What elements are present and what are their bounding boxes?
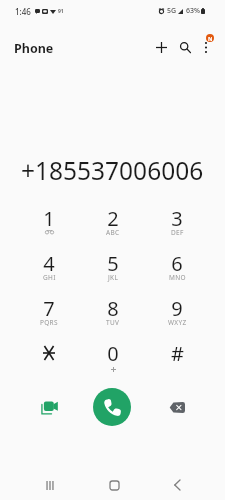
staticText: 3	[171, 205, 183, 232]
staticText: JKL	[108, 273, 119, 282]
staticText: PQRS	[40, 318, 58, 327]
staticText: 5G	[167, 6, 177, 16]
button[interactable]: 2	[81, 205, 145, 250]
button[interactable]: 7	[17, 295, 81, 340]
staticText: +185537006006	[21, 154, 204, 187]
staticText: WXYZ	[168, 318, 187, 327]
staticText: MNO	[169, 273, 186, 282]
button[interactable]: Back	[160, 470, 194, 500]
button[interactable]: 4	[17, 250, 81, 295]
button[interactable]: More options	[194, 35, 218, 59]
staticText: 6	[171, 250, 183, 277]
staticText: 1	[43, 205, 55, 232]
staticText: Phone	[14, 40, 54, 57]
button[interactable]: 1	[17, 205, 81, 250]
staticText: 1:46	[15, 6, 31, 17]
button[interactable]: 5	[81, 250, 145, 295]
button[interactable]: 3	[145, 205, 209, 250]
button[interactable]: Backspace	[161, 388, 193, 426]
staticText: #	[171, 340, 184, 367]
staticText: 0	[107, 340, 119, 367]
button[interactable]: Home	[97, 470, 131, 500]
staticText: 2	[107, 205, 119, 232]
button[interactable]: Call	[93, 388, 131, 426]
button[interactable]	[17, 340, 81, 385]
staticText: GHI	[43, 273, 56, 282]
staticText: N	[208, 35, 213, 42]
button[interactable]: 8	[81, 295, 145, 340]
button[interactable]: 6	[145, 250, 209, 295]
staticText: 63%	[186, 6, 200, 16]
button[interactable]: 0	[81, 340, 145, 385]
button[interactable]: 9	[145, 295, 209, 340]
staticText: TUV	[106, 318, 120, 327]
staticText: 8	[107, 295, 119, 322]
button[interactable]: Recents	[33, 470, 67, 500]
button[interactable]: Add contact	[149, 35, 173, 59]
staticText: DEF	[171, 228, 184, 237]
staticText: 5	[107, 250, 119, 277]
button[interactable]: Video call	[33, 388, 65, 426]
staticText: 4	[43, 250, 55, 277]
staticText: 91	[58, 8, 64, 15]
staticText: 9	[171, 295, 183, 322]
staticText: ABC	[106, 228, 120, 237]
staticText: 7	[43, 295, 55, 322]
button[interactable]: #	[145, 340, 209, 385]
button[interactable]: Search	[173, 35, 197, 59]
